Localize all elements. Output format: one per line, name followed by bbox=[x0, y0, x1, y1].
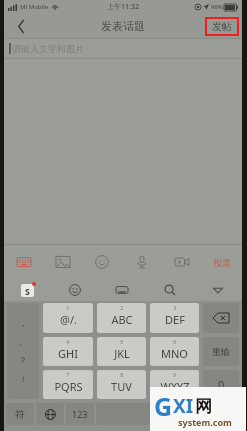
staticText: 3 bbox=[173, 304, 177, 312]
staticText: @/. bbox=[60, 312, 77, 327]
staticText: 重输 bbox=[212, 346, 230, 357]
staticText: DEF bbox=[165, 312, 185, 327]
staticText: 符 bbox=[15, 408, 25, 421]
staticText: 网 bbox=[195, 396, 212, 417]
button[interactable]: 7 bbox=[43, 370, 93, 399]
staticText: 6 bbox=[173, 338, 177, 346]
button[interactable]: Search bbox=[146, 279, 194, 301]
staticText: PQRS bbox=[54, 379, 83, 394]
button[interactable]: 5 bbox=[97, 337, 146, 366]
staticText: WXYZ bbox=[160, 379, 190, 394]
button[interactable]: 投票 bbox=[202, 245, 242, 279]
staticText: MNO bbox=[161, 346, 188, 361]
button[interactable]: 2 bbox=[97, 303, 146, 333]
button[interactable]: Hide keyboard bbox=[194, 279, 242, 301]
button[interactable]: 3 bbox=[150, 303, 199, 333]
staticText: ， bbox=[19, 318, 27, 328]
staticText: 98% bbox=[211, 3, 223, 11]
button[interactable]: 1 bbox=[43, 303, 93, 333]
staticText: 2 bbox=[120, 304, 124, 312]
staticText: 0 bbox=[218, 377, 225, 392]
button[interactable]: Clipboard bbox=[98, 279, 146, 301]
button[interactable]: 6 bbox=[150, 337, 199, 366]
button[interactable]: Numbers bbox=[66, 403, 94, 425]
button[interactable]: Emoji bbox=[51, 279, 98, 301]
staticText: 发表话题 bbox=[101, 19, 145, 33]
staticText: 123 bbox=[72, 408, 88, 420]
button[interactable]: 9 bbox=[150, 370, 199, 399]
staticText: 发帖 bbox=[212, 20, 232, 33]
staticText: system.com bbox=[178, 416, 232, 428]
staticText: JKL bbox=[114, 346, 130, 361]
staticText: ？ bbox=[19, 355, 27, 365]
staticText: 1 bbox=[66, 304, 70, 312]
staticText: ABC bbox=[111, 312, 133, 327]
button[interactable]: 4 bbox=[43, 337, 93, 366]
staticText: 9 bbox=[173, 371, 177, 379]
button[interactable]: Space bbox=[96, 403, 240, 425]
button[interactable]: 请输入文字和图片 bbox=[4, 39, 242, 58]
button[interactable]: Back bbox=[4, 14, 38, 38]
staticText: S bbox=[25, 285, 30, 297]
button[interactable]: Language bbox=[36, 403, 64, 425]
button[interactable]: Emoji bbox=[82, 245, 122, 279]
staticText: XI bbox=[173, 393, 194, 419]
staticText: 。 bbox=[19, 337, 27, 347]
button[interactable]: Symbols bbox=[6, 403, 34, 425]
staticText: GHI bbox=[58, 346, 78, 361]
staticText: 投票 bbox=[213, 257, 231, 268]
button[interactable]: 8 bbox=[97, 370, 146, 399]
button[interactable]: Backspace bbox=[203, 303, 239, 333]
button[interactable]: 发帖 bbox=[206, 18, 238, 35]
staticText: 8 bbox=[120, 371, 124, 379]
staticText: ！ bbox=[19, 374, 27, 384]
staticText: 上午11:32 bbox=[107, 2, 139, 12]
staticText: 4 bbox=[66, 338, 70, 346]
button[interactable]: Zero bbox=[203, 370, 239, 399]
staticText: G bbox=[154, 389, 173, 423]
button[interactable]: Sogou bbox=[4, 279, 51, 301]
button[interactable]: Video bbox=[162, 245, 202, 279]
button[interactable]: Keyboard bbox=[4, 245, 43, 279]
staticText: 5 bbox=[120, 338, 124, 346]
button[interactable]: Voice bbox=[122, 245, 162, 279]
button[interactable]: Re-enter bbox=[203, 337, 239, 366]
button[interactable]: Image bbox=[43, 245, 82, 279]
staticText: TUV bbox=[111, 379, 132, 394]
staticText: Mi Mobile bbox=[20, 3, 49, 11]
staticText: 请输入文字和图片 bbox=[12, 43, 84, 54]
staticText: 7 bbox=[66, 371, 70, 379]
